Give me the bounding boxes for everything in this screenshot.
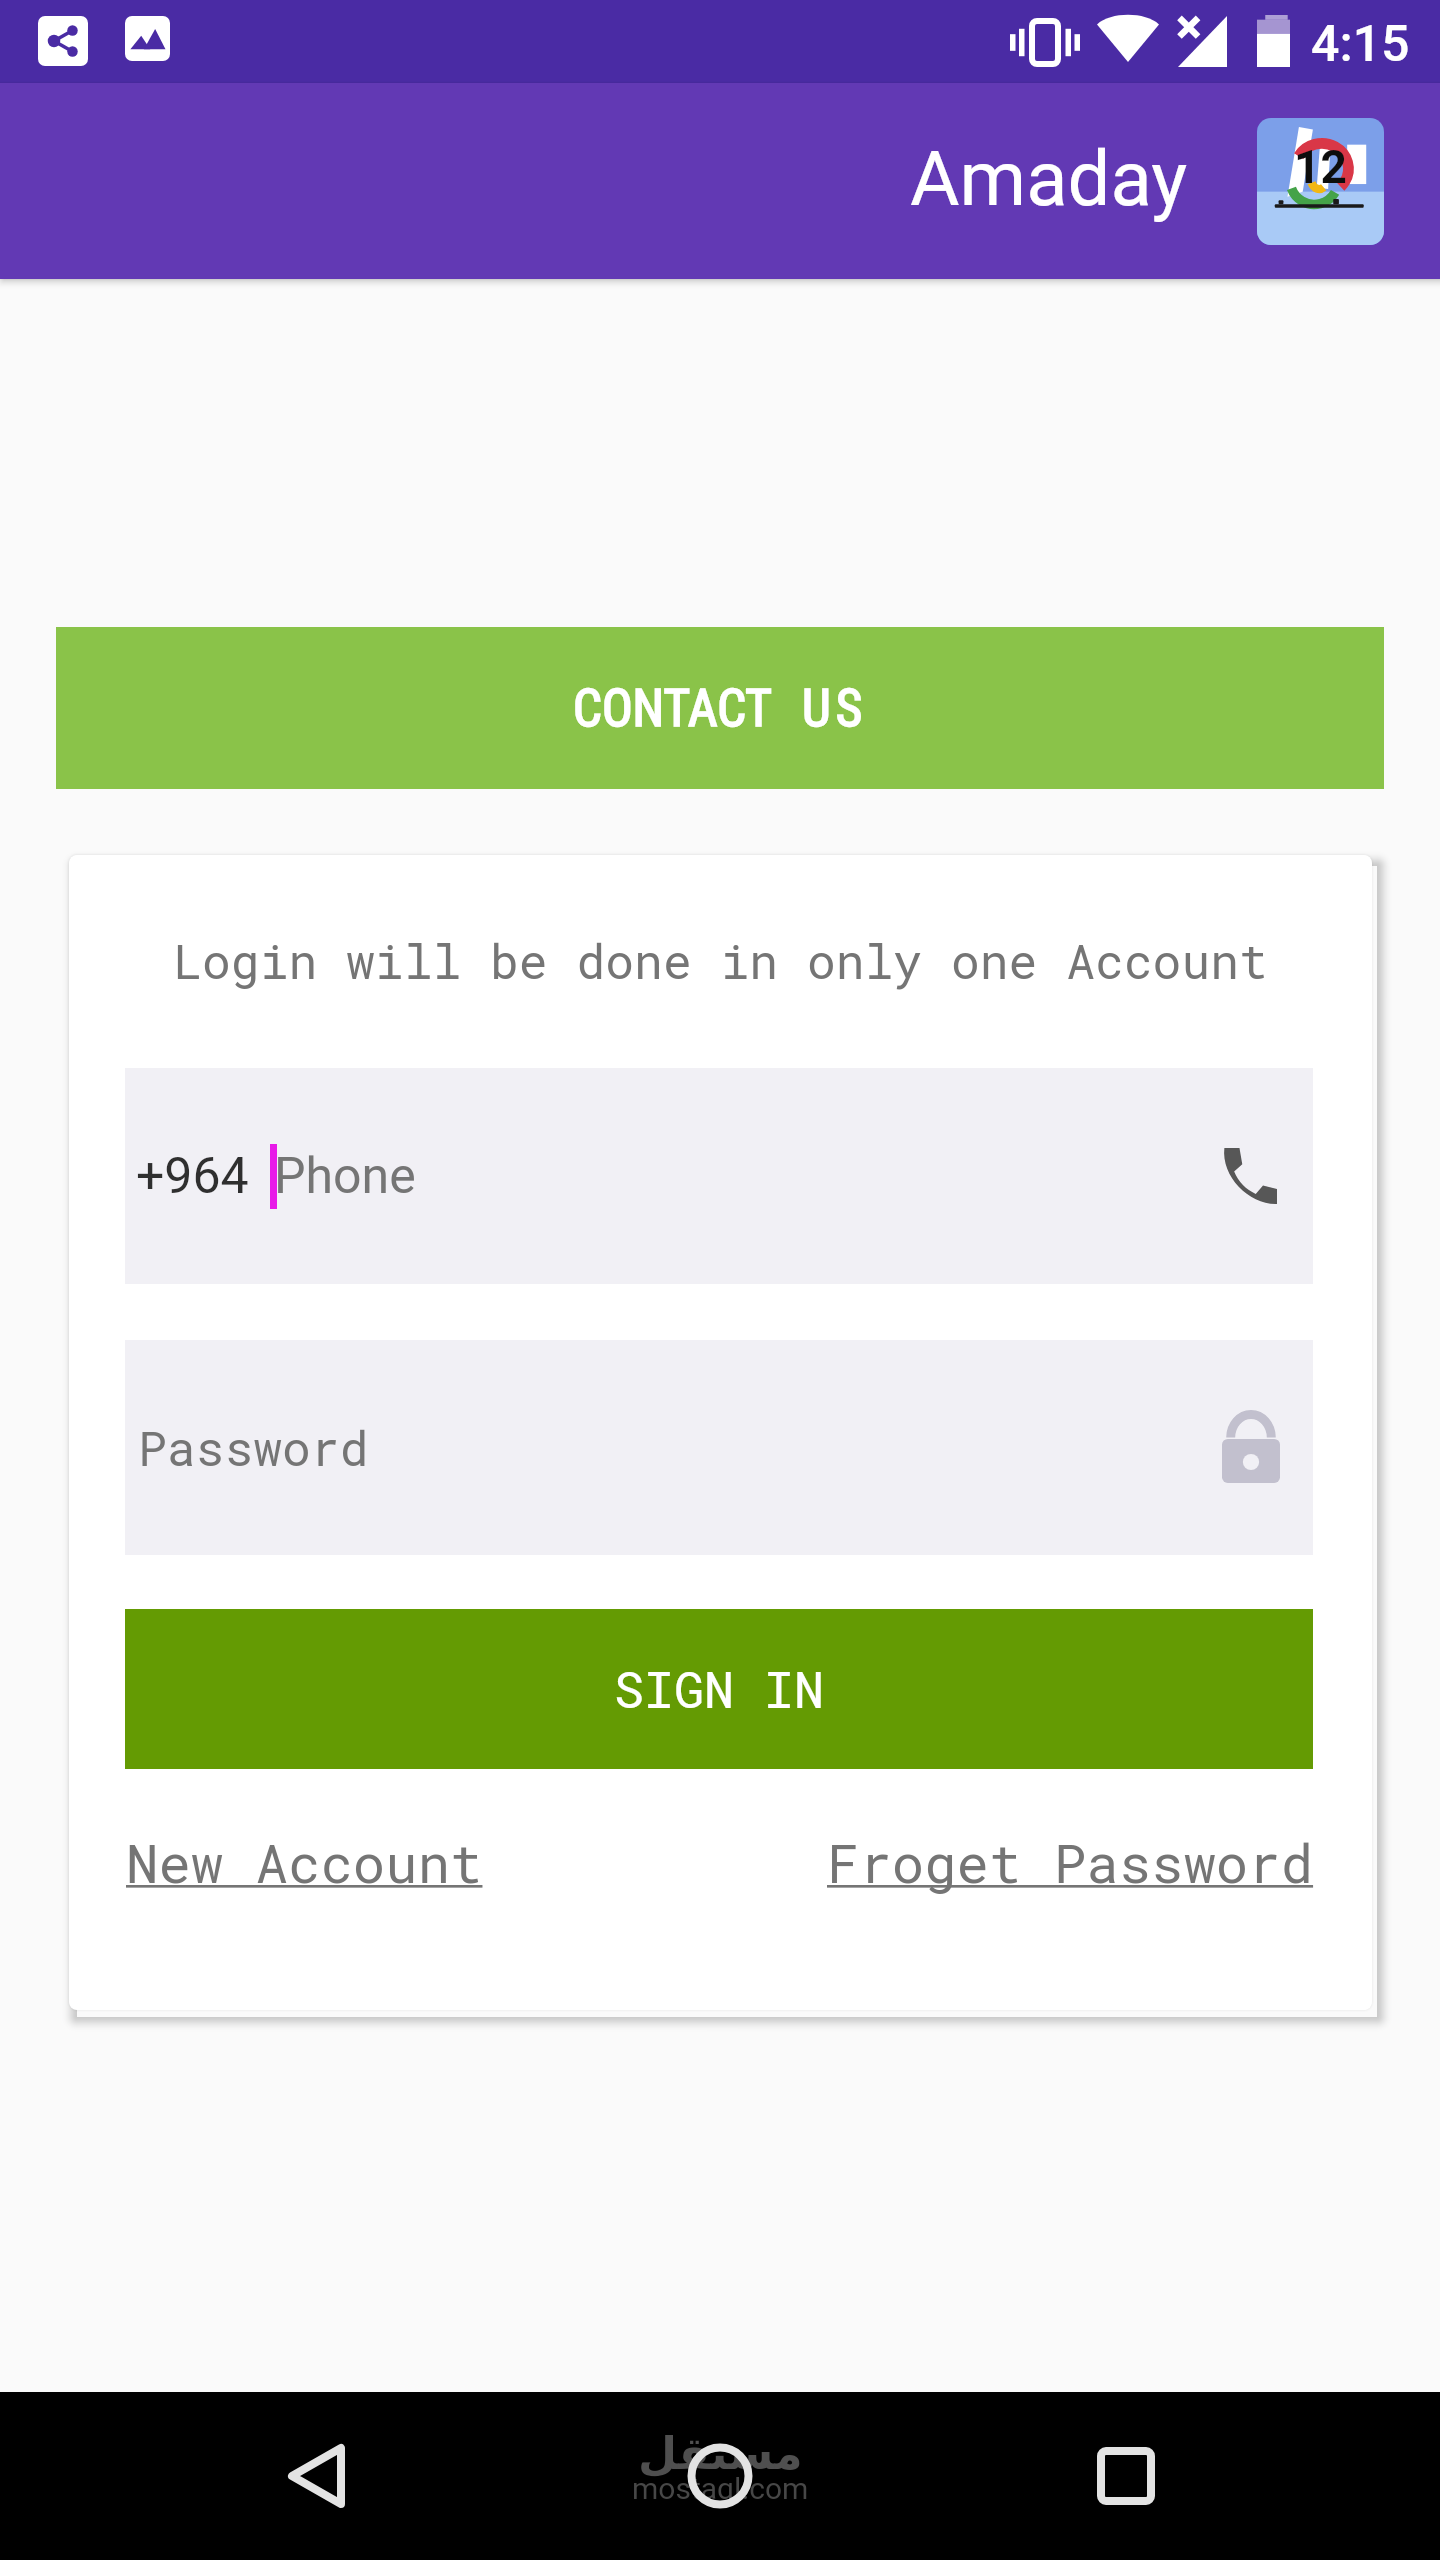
staticText: New Account: [126, 1826, 483, 1897]
staticText: 12: [1294, 140, 1347, 194]
button[interactable]: Password: [125, 1340, 1313, 1555]
staticText: +964: [136, 1147, 249, 1206]
staticText: Froget Password: [827, 1826, 1314, 1897]
button[interactable]: Home: [644, 2400, 796, 2552]
staticText: SIGN IN: [614, 1656, 825, 1722]
button[interactable]: New Account: [126, 1826, 483, 1897]
staticText: Password: [138, 1416, 369, 1479]
staticText: Login will be done in only one Account: [69, 929, 1372, 992]
staticText: مستقل: [638, 2427, 803, 2479]
other: Password: [1222, 1413, 1280, 1483]
button[interactable]: Back: [242, 2400, 394, 2552]
staticText: 4:15: [1311, 15, 1410, 74]
staticText: US: [802, 679, 868, 739]
button[interactable]: Recent apps: [1050, 2400, 1202, 2552]
button[interactable]: SIGN IN: [125, 1609, 1313, 1769]
staticText: CONTACT: [573, 679, 772, 739]
other: Phone: [1221, 1148, 1277, 1204]
button[interactable]: Amaday logo: [1257, 118, 1384, 245]
button[interactable]: Froget Password: [827, 1826, 1314, 1897]
staticText: Phone: [274, 1147, 416, 1206]
button[interactable]: +964: [125, 1068, 1313, 1284]
staticText: mostaql.com: [632, 2471, 809, 2506]
button[interactable]: CONTACT: [56, 627, 1384, 789]
staticText: Amaday: [910, 134, 1188, 223]
